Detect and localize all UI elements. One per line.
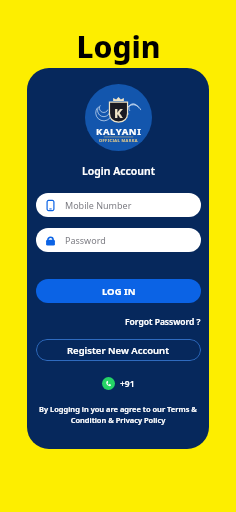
staticText: K [114, 104, 123, 122]
button[interactable]: WhatsApp [98, 375, 139, 392]
staticText: Register New Account [67, 344, 170, 357]
staticText: Login Account [82, 164, 155, 178]
staticText: By Logging in you are agree to our Terms… [34, 404, 202, 425]
staticText: Password [65, 234, 106, 246]
staticText: Forgot Password ? [125, 316, 201, 328]
button[interactable]: Password [36, 228, 201, 252]
other: WhatsApp [102, 377, 115, 390]
staticText: Mobile Number [65, 199, 132, 211]
staticText: OFFICIAL MARKA [99, 138, 138, 143]
button[interactable]: Mobile Number [36, 193, 201, 217]
staticText: Login [76, 26, 161, 67]
button[interactable]: Forgot Password ? [125, 316, 201, 328]
button[interactable]: Register New Account [36, 339, 201, 361]
button[interactable]: LOG IN [36, 279, 201, 303]
staticText: LOG IN [102, 285, 136, 298]
staticText: KALYANI [96, 125, 142, 138]
staticText: +91 [120, 378, 135, 390]
